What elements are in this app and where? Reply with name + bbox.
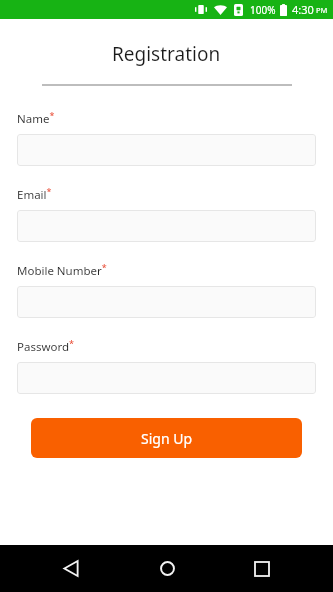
button[interactable]	[17, 286, 316, 318]
staticText: Sign Up	[141, 429, 193, 448]
button[interactable]	[17, 210, 316, 242]
staticText: Registration	[112, 41, 221, 67]
button[interactable]	[17, 362, 316, 394]
button[interactable]: Recent apps	[238, 545, 286, 592]
button[interactable]	[17, 134, 316, 166]
staticText: Email*	[17, 185, 52, 203]
staticText: Name*	[17, 109, 55, 127]
staticText: 4:30	[292, 2, 314, 17]
staticText: PM	[316, 5, 328, 15]
button[interactable]: Home	[143, 545, 191, 592]
staticText: Mobile Number*	[17, 261, 107, 279]
button[interactable]: Sign Up	[31, 418, 302, 458]
staticText: 100%	[250, 3, 276, 17]
staticText: Password*	[17, 337, 74, 355]
button[interactable]: Back	[47, 545, 95, 592]
